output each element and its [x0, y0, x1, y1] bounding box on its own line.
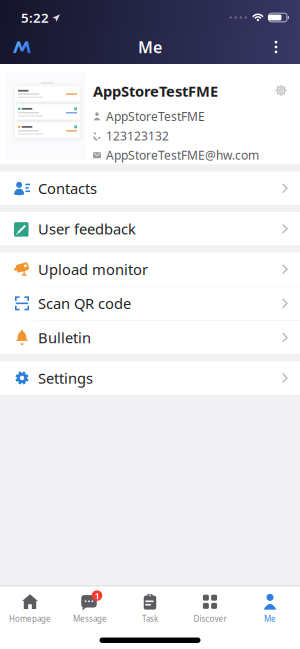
button[interactable]: User feedback: [0, 212, 300, 245]
button[interactable]: Discover: [180, 593, 240, 624]
staticText: Task: [142, 613, 158, 624]
staticText: AppStoreTestFME: [106, 108, 205, 124]
button[interactable]: Contacts: [0, 171, 300, 205]
button[interactable]: More: [261, 32, 291, 62]
staticText: Scan QR code: [38, 294, 131, 313]
button[interactable]: Scan QR code: [0, 287, 300, 320]
button[interactable]: Settings: [0, 361, 300, 395]
button[interactable]: Task: [120, 593, 180, 624]
staticText: Bulletin: [38, 328, 91, 347]
staticText: AppStoreTestFME: [93, 81, 218, 101]
staticText: 5:22: [21, 9, 49, 26]
staticText: AppStoreTestFME@hw.com: [106, 147, 259, 163]
staticText: 123123132: [106, 128, 169, 144]
staticText: Contacts: [38, 178, 97, 198]
staticText: Settings: [38, 368, 93, 388]
button[interactable]: Me: [240, 593, 300, 624]
button[interactable]: Homepage: [0, 593, 60, 624]
staticText: Discover: [193, 613, 226, 624]
staticText: Me: [264, 613, 276, 624]
staticText: 1: [94, 589, 99, 602]
button[interactable]: 1: [60, 593, 120, 624]
staticText: Message: [73, 613, 107, 624]
staticText: Homepage: [9, 613, 51, 624]
button[interactable]: Bulletin: [0, 321, 300, 354]
staticText: User feedback: [38, 219, 136, 238]
button[interactable]: Upload monitor: [0, 252, 300, 286]
button[interactable]: Profile: [0, 64, 300, 164]
staticText: Me: [138, 36, 162, 58]
staticText: Upload monitor: [38, 259, 148, 279]
